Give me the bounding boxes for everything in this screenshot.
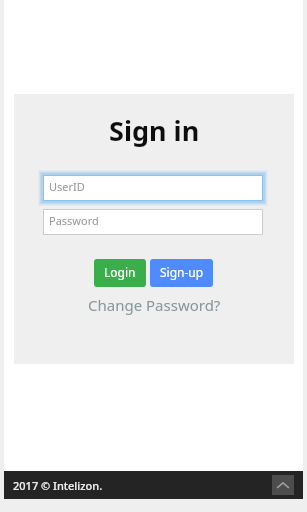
staticText: Change Password? (88, 295, 221, 315)
staticText: Password (49, 213, 99, 228)
button[interactable]: Password (43, 209, 263, 235)
staticText: 2017 © Intelizon. (13, 478, 103, 493)
staticText: UserID (49, 179, 85, 194)
button[interactable]: Change Password? (88, 295, 221, 315)
button[interactable]: Scroll to top (272, 475, 294, 495)
button[interactable]: UserID (43, 175, 263, 201)
staticText: Sign-up (160, 264, 204, 280)
staticText: Sign in (109, 112, 200, 149)
button[interactable]: Sign-up (150, 259, 213, 287)
staticText: Login (104, 264, 136, 280)
button[interactable]: Login (94, 259, 146, 287)
